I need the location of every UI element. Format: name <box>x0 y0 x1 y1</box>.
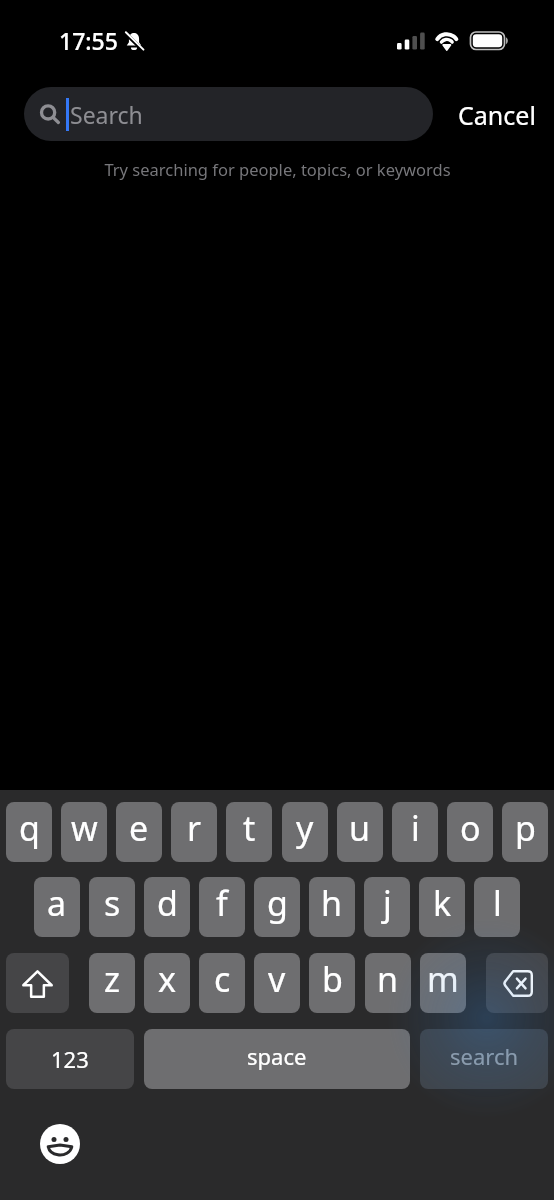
staticText: f <box>216 880 228 926</box>
staticText: j <box>383 880 392 926</box>
staticText: z <box>104 956 120 1002</box>
staticText: space <box>247 1041 307 1071</box>
staticText: i <box>411 805 420 851</box>
button[interactable]: Cancel <box>455 95 539 135</box>
staticText: w <box>71 805 98 851</box>
button[interactable]: o <box>447 802 493 862</box>
staticText: g <box>267 880 288 926</box>
button[interactable]: c <box>199 953 245 1013</box>
staticText: x <box>158 956 176 1002</box>
button[interactable]: d <box>144 877 190 937</box>
staticText: e <box>129 805 149 851</box>
staticText: search <box>450 1041 519 1071</box>
staticText: a <box>47 880 67 926</box>
button[interactable]: i <box>392 802 438 862</box>
button[interactable]: space <box>144 1029 410 1089</box>
button[interactable]: k <box>419 877 465 937</box>
button[interactable]: a <box>34 877 80 937</box>
button[interactable]: u <box>337 802 383 862</box>
staticText: Search <box>70 99 143 130</box>
button[interactable]: Backspace <box>486 953 548 1013</box>
staticText: v <box>268 956 286 1002</box>
button[interactable]: Emoji keyboard <box>40 1124 80 1164</box>
staticText: d <box>157 880 178 926</box>
button[interactable]: 123 <box>6 1029 134 1089</box>
button[interactable]: l <box>474 877 520 937</box>
button[interactable]: t <box>226 802 272 862</box>
button[interactable]: Shift <box>6 953 69 1013</box>
button[interactable]: z <box>89 953 135 1013</box>
staticText: Cancel <box>458 98 536 132</box>
button[interactable]: g <box>254 877 300 937</box>
button[interactable]: m <box>420 953 466 1013</box>
staticText: p <box>515 805 536 851</box>
button[interactable]: x <box>144 953 190 1013</box>
staticText: s <box>104 880 121 926</box>
button[interactable]: s <box>89 877 135 937</box>
staticText: k <box>433 880 452 926</box>
button[interactable]: p <box>502 802 548 862</box>
staticText: h <box>321 880 343 926</box>
staticText: o <box>460 805 481 851</box>
staticText: t <box>243 805 256 851</box>
staticText: l <box>493 880 502 926</box>
button[interactable]: v <box>254 953 300 1013</box>
staticText: 17:55 <box>59 25 118 56</box>
button[interactable]: search <box>420 1029 548 1089</box>
button[interactable]: e <box>116 802 162 862</box>
staticText: c <box>214 956 231 1002</box>
staticText: y <box>296 805 314 851</box>
button[interactable]: Search <box>24 87 433 141</box>
staticText: q <box>19 805 40 851</box>
button[interactable]: b <box>309 953 355 1013</box>
staticText: m <box>427 956 459 1002</box>
staticText: 123 <box>51 1044 89 1074</box>
staticText: r <box>187 805 202 851</box>
button[interactable]: j <box>364 877 410 937</box>
staticText: u <box>349 805 371 851</box>
button[interactable]: r <box>171 802 217 862</box>
staticText: n <box>377 956 399 1002</box>
button[interactable]: w <box>61 802 107 862</box>
button[interactable]: h <box>309 877 355 937</box>
button[interactable]: n <box>365 953 411 1013</box>
button[interactable]: y <box>282 802 328 862</box>
staticText: Try searching for people, topics, or key… <box>104 158 451 180</box>
button[interactable]: q <box>6 802 52 862</box>
staticText: b <box>322 956 343 1002</box>
button[interactable]: f <box>199 877 245 937</box>
